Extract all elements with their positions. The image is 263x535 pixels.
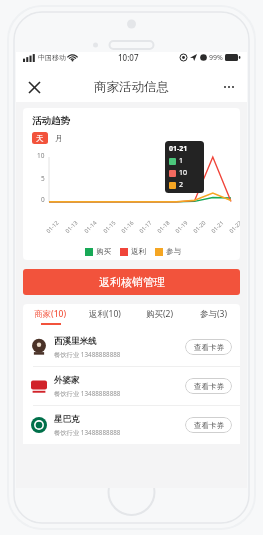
button[interactable]: 查看卡券 bbox=[185, 378, 232, 394]
button[interactable]: 参与(3) bbox=[186, 304, 240, 328]
button[interactable]: More options bbox=[217, 75, 241, 99]
button[interactable]: 外婆家 bbox=[23, 367, 240, 405]
staticText: 0 bbox=[41, 195, 45, 204]
staticText: 99% bbox=[209, 53, 223, 63]
staticText: 01-22 bbox=[227, 219, 240, 235]
staticText: 01-21 bbox=[209, 219, 226, 235]
staticText: 01-18 bbox=[155, 219, 172, 235]
staticText: 商家(10) bbox=[34, 308, 67, 320]
button[interactable]: 星巴克 bbox=[23, 406, 240, 444]
staticText: 1 bbox=[179, 156, 184, 166]
staticText: 参与(3) bbox=[200, 308, 227, 320]
staticText: 外婆家 bbox=[54, 375, 80, 386]
staticText: 返利核销管理 bbox=[99, 275, 165, 289]
staticText: 01-17 bbox=[137, 219, 154, 235]
staticText: 01-21 bbox=[169, 144, 188, 154]
staticText: 天 bbox=[36, 134, 44, 143]
staticText: 星巴克 bbox=[54, 414, 80, 425]
staticText: 购买(2) bbox=[146, 308, 173, 320]
staticText: 餐饮行业 13488888888 bbox=[54, 389, 121, 398]
staticText: 01-15 bbox=[101, 219, 118, 235]
staticText: 2 bbox=[179, 180, 184, 190]
button[interactable]: Close bbox=[22, 75, 46, 99]
staticText: 10 bbox=[37, 151, 45, 160]
staticText: 购买 bbox=[96, 247, 111, 256]
staticText: 01-19 bbox=[173, 219, 190, 235]
staticText: 查看卡券 bbox=[194, 343, 224, 352]
staticText: 10:07 bbox=[118, 52, 139, 63]
button[interactable]: 返利(10) bbox=[78, 304, 132, 328]
staticText: 01-12 bbox=[44, 219, 61, 235]
button[interactable]: 天 bbox=[32, 132, 48, 144]
button[interactable]: 西溪里米线 bbox=[23, 328, 240, 366]
staticText: 返利(10) bbox=[89, 308, 121, 320]
button[interactable]: 商家(10) bbox=[23, 304, 78, 328]
staticText: 01-14 bbox=[82, 219, 99, 235]
staticText: 查看卡券 bbox=[194, 421, 224, 430]
staticText: 月 bbox=[55, 134, 63, 143]
staticText: 中国移动 bbox=[38, 53, 66, 62]
button[interactable]: 购买(2) bbox=[132, 304, 186, 328]
button[interactable]: 返利核销管理 bbox=[23, 269, 240, 295]
staticText: 商家活动信息 bbox=[94, 79, 169, 95]
staticText: 10 bbox=[179, 168, 188, 178]
staticText: 返利 bbox=[131, 247, 146, 256]
button[interactable]: 月 bbox=[55, 134, 63, 143]
staticText: 西溪里米线 bbox=[54, 336, 97, 347]
button[interactable]: 查看卡券 bbox=[185, 339, 232, 355]
staticText: 参与 bbox=[166, 247, 181, 256]
staticText: 餐饮行业 13488888888 bbox=[54, 428, 121, 437]
staticText: 01-13 bbox=[63, 219, 80, 235]
staticText: 5 bbox=[41, 174, 45, 183]
staticText: 餐饮行业 13488888888 bbox=[54, 350, 121, 359]
button[interactable]: 查看卡券 bbox=[185, 417, 232, 433]
staticText: 01-20 bbox=[191, 219, 208, 235]
staticText: 查看卡券 bbox=[194, 382, 224, 391]
staticText: 01-16 bbox=[119, 219, 136, 235]
staticText: 活动趋势 bbox=[32, 115, 70, 127]
